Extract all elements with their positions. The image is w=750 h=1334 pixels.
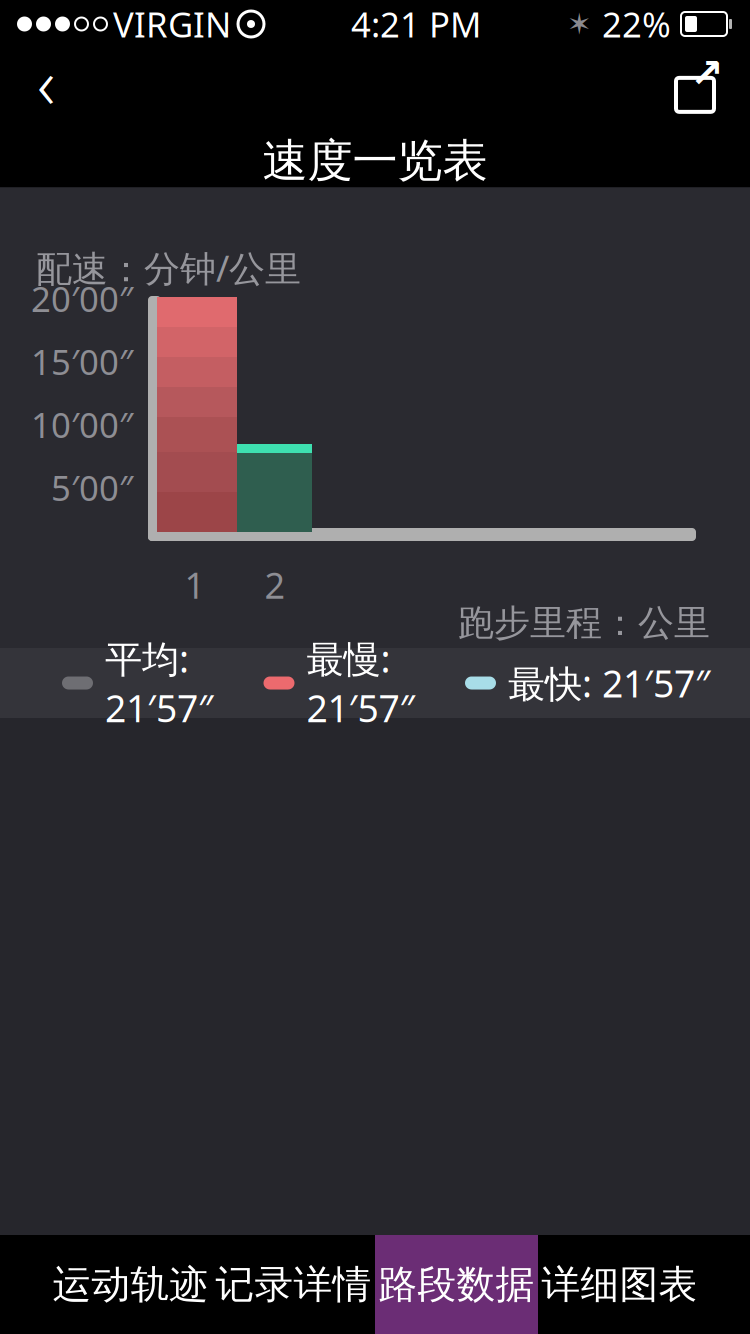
- staticText: 平均: 21′57″: [105, 633, 213, 733]
- staticText: 4:21 PM: [351, 1, 481, 47]
- button[interactable]: 详细图表: [538, 1235, 701, 1334]
- staticText: ✶: [567, 7, 592, 41]
- staticText: 22%: [602, 1, 671, 47]
- staticText: ↗: [690, 50, 724, 96]
- staticText: 最慢: 21′57″: [306, 633, 414, 733]
- staticText: 最快: 21′57″: [508, 658, 710, 708]
- button[interactable]: 运动轨迹: [49, 1235, 212, 1334]
- staticText: 详细图表: [541, 1261, 697, 1308]
- staticText: 1: [184, 561, 205, 609]
- staticText: 速度一览表: [262, 133, 487, 189]
- staticText: 2: [264, 561, 285, 609]
- staticText: 运动轨迹: [52, 1261, 208, 1308]
- button[interactable]: 记录详情: [212, 1235, 375, 1334]
- staticText: 配速：分钟/公里: [36, 244, 301, 292]
- staticText: 5′00″: [51, 464, 133, 510]
- staticText: 跑步里程：公里: [458, 601, 710, 645]
- button[interactable]: Back: [6, 49, 86, 115]
- staticText: ‹: [37, 36, 55, 128]
- button[interactable]: 路段数据: [375, 1235, 538, 1334]
- staticText: 15′00″: [31, 338, 133, 384]
- staticText: VIRGIN: [113, 1, 231, 47]
- staticText: 路段数据: [378, 1261, 534, 1308]
- staticText: 20′00″: [31, 275, 133, 321]
- staticText: 10′00″: [31, 401, 133, 447]
- button[interactable]: Share: [664, 49, 736, 115]
- staticText: 记录详情: [215, 1261, 371, 1308]
